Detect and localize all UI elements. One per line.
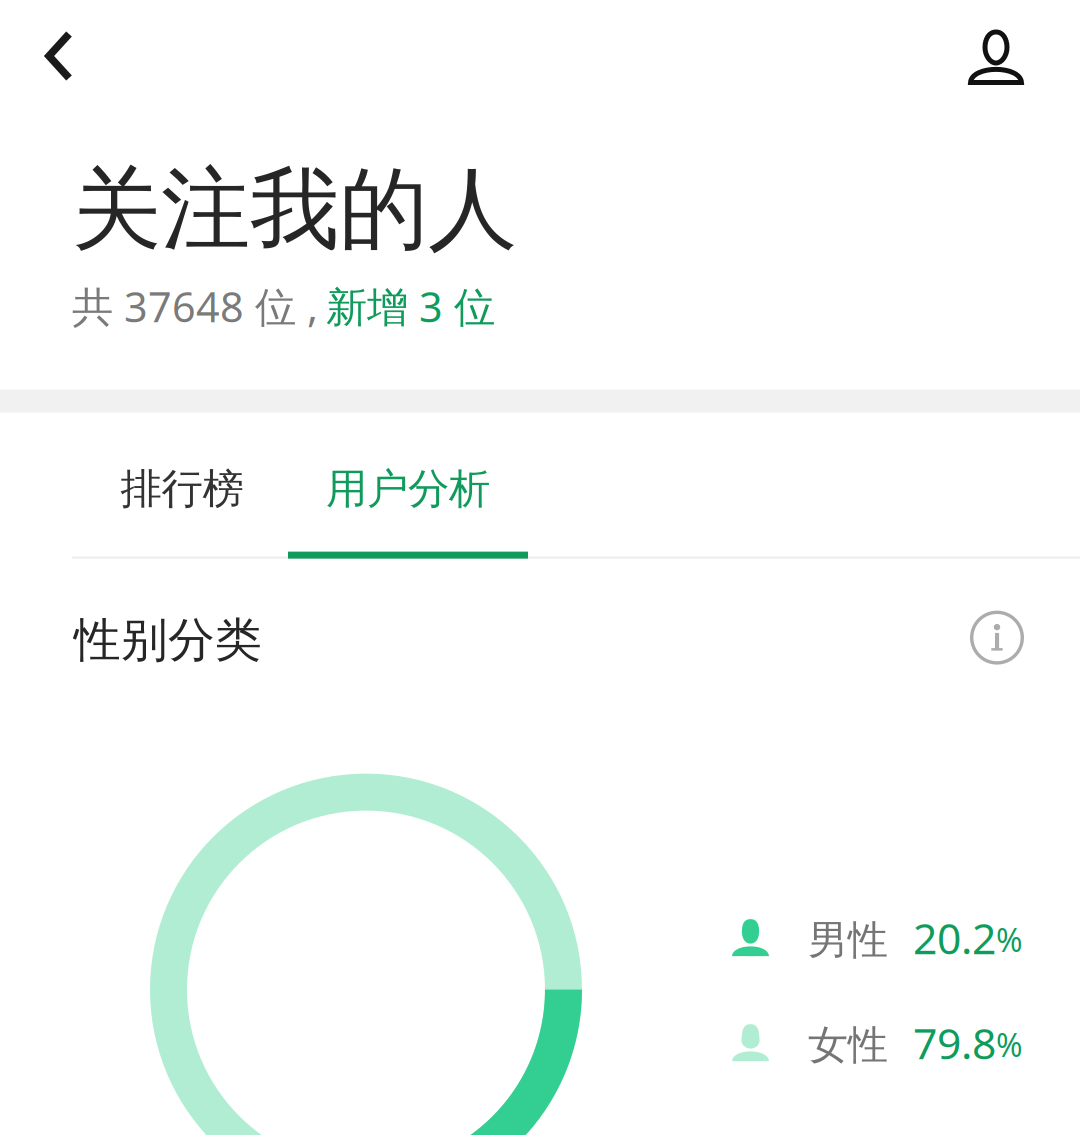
button[interactable]: 排行榜 <box>96 413 268 610</box>
staticText: 关注我的人 <box>72 155 517 265</box>
button[interactable]: Profile <box>940 0 1080 113</box>
button[interactable]: Back <box>0 0 101 113</box>
staticText: 79.8 <box>913 1014 996 1071</box>
staticText: 女性 <box>808 1020 888 1070</box>
staticText: 用户分析 <box>326 464 490 514</box>
staticText: 排行榜 <box>120 464 243 514</box>
staticText: 共 37648 位 , <box>72 279 318 334</box>
staticText: 新增 3 位 <box>326 279 495 334</box>
staticText: % <box>996 918 1023 961</box>
staticText: 20.2 <box>913 909 996 966</box>
button[interactable]: Info <box>970 611 1024 665</box>
button[interactable]: 用户分析 <box>288 413 528 610</box>
staticText: % <box>996 1023 1023 1066</box>
staticText: 性别分类 <box>74 611 262 669</box>
staticText: 男性 <box>808 915 888 965</box>
